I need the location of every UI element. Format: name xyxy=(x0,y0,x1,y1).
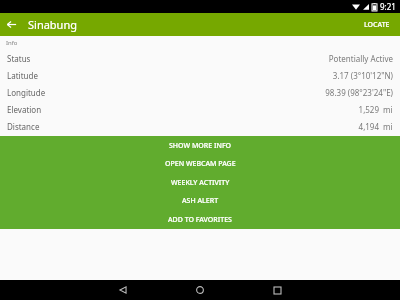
staticText: LOCATE xyxy=(364,20,390,30)
staticText: WEEKLY ACTIVITY xyxy=(171,178,230,188)
button[interactable]: ADD TO FAVORITES xyxy=(0,211,400,229)
staticText: 1,529 xyxy=(358,104,379,115)
staticText: Longitude xyxy=(7,87,46,98)
staticText: Sinabung xyxy=(28,17,77,32)
button[interactable]: Elevation xyxy=(0,101,400,118)
button[interactable]: ASH ALERT xyxy=(0,192,400,210)
button[interactable]: Back xyxy=(112,280,134,300)
button[interactable]: WEEKLY ACTIVITY xyxy=(0,174,400,192)
staticText: SHOW MORE INFO xyxy=(169,141,232,151)
staticText: Latitude xyxy=(7,70,38,81)
staticText: Status xyxy=(7,53,31,64)
button[interactable]: SHOW MORE INFO xyxy=(0,137,400,155)
button[interactable]: LOCATE xyxy=(354,13,400,36)
button[interactable]: Distance xyxy=(0,118,400,135)
staticText: 9:21 xyxy=(380,1,396,12)
button[interactable]: Home xyxy=(189,280,211,300)
button[interactable]: Longitude xyxy=(0,84,400,101)
staticText: Elevation xyxy=(7,104,42,115)
staticText: mi xyxy=(383,104,393,115)
staticText: Distance xyxy=(7,121,40,132)
staticText: mi xyxy=(383,121,393,132)
button[interactable]: Back xyxy=(0,13,23,36)
staticText: OPEN WEBCAM PAGE xyxy=(165,159,236,169)
staticText: Info xyxy=(6,39,18,47)
staticText: 4,194 xyxy=(358,121,379,132)
staticText: 98.39 (98°23'24"E) xyxy=(325,87,393,98)
staticText: Potentially Active xyxy=(328,53,393,64)
button[interactable]: Latitude xyxy=(0,67,400,84)
staticText: 3.17 (3°10'12"N) xyxy=(332,70,393,81)
button[interactable]: OPEN WEBCAM PAGE xyxy=(0,155,400,173)
button[interactable]: Status xyxy=(0,50,400,67)
staticText: ADD TO FAVORITES xyxy=(168,215,232,225)
staticText: ASH ALERT xyxy=(182,196,219,206)
button[interactable]: Recent apps xyxy=(266,280,288,300)
